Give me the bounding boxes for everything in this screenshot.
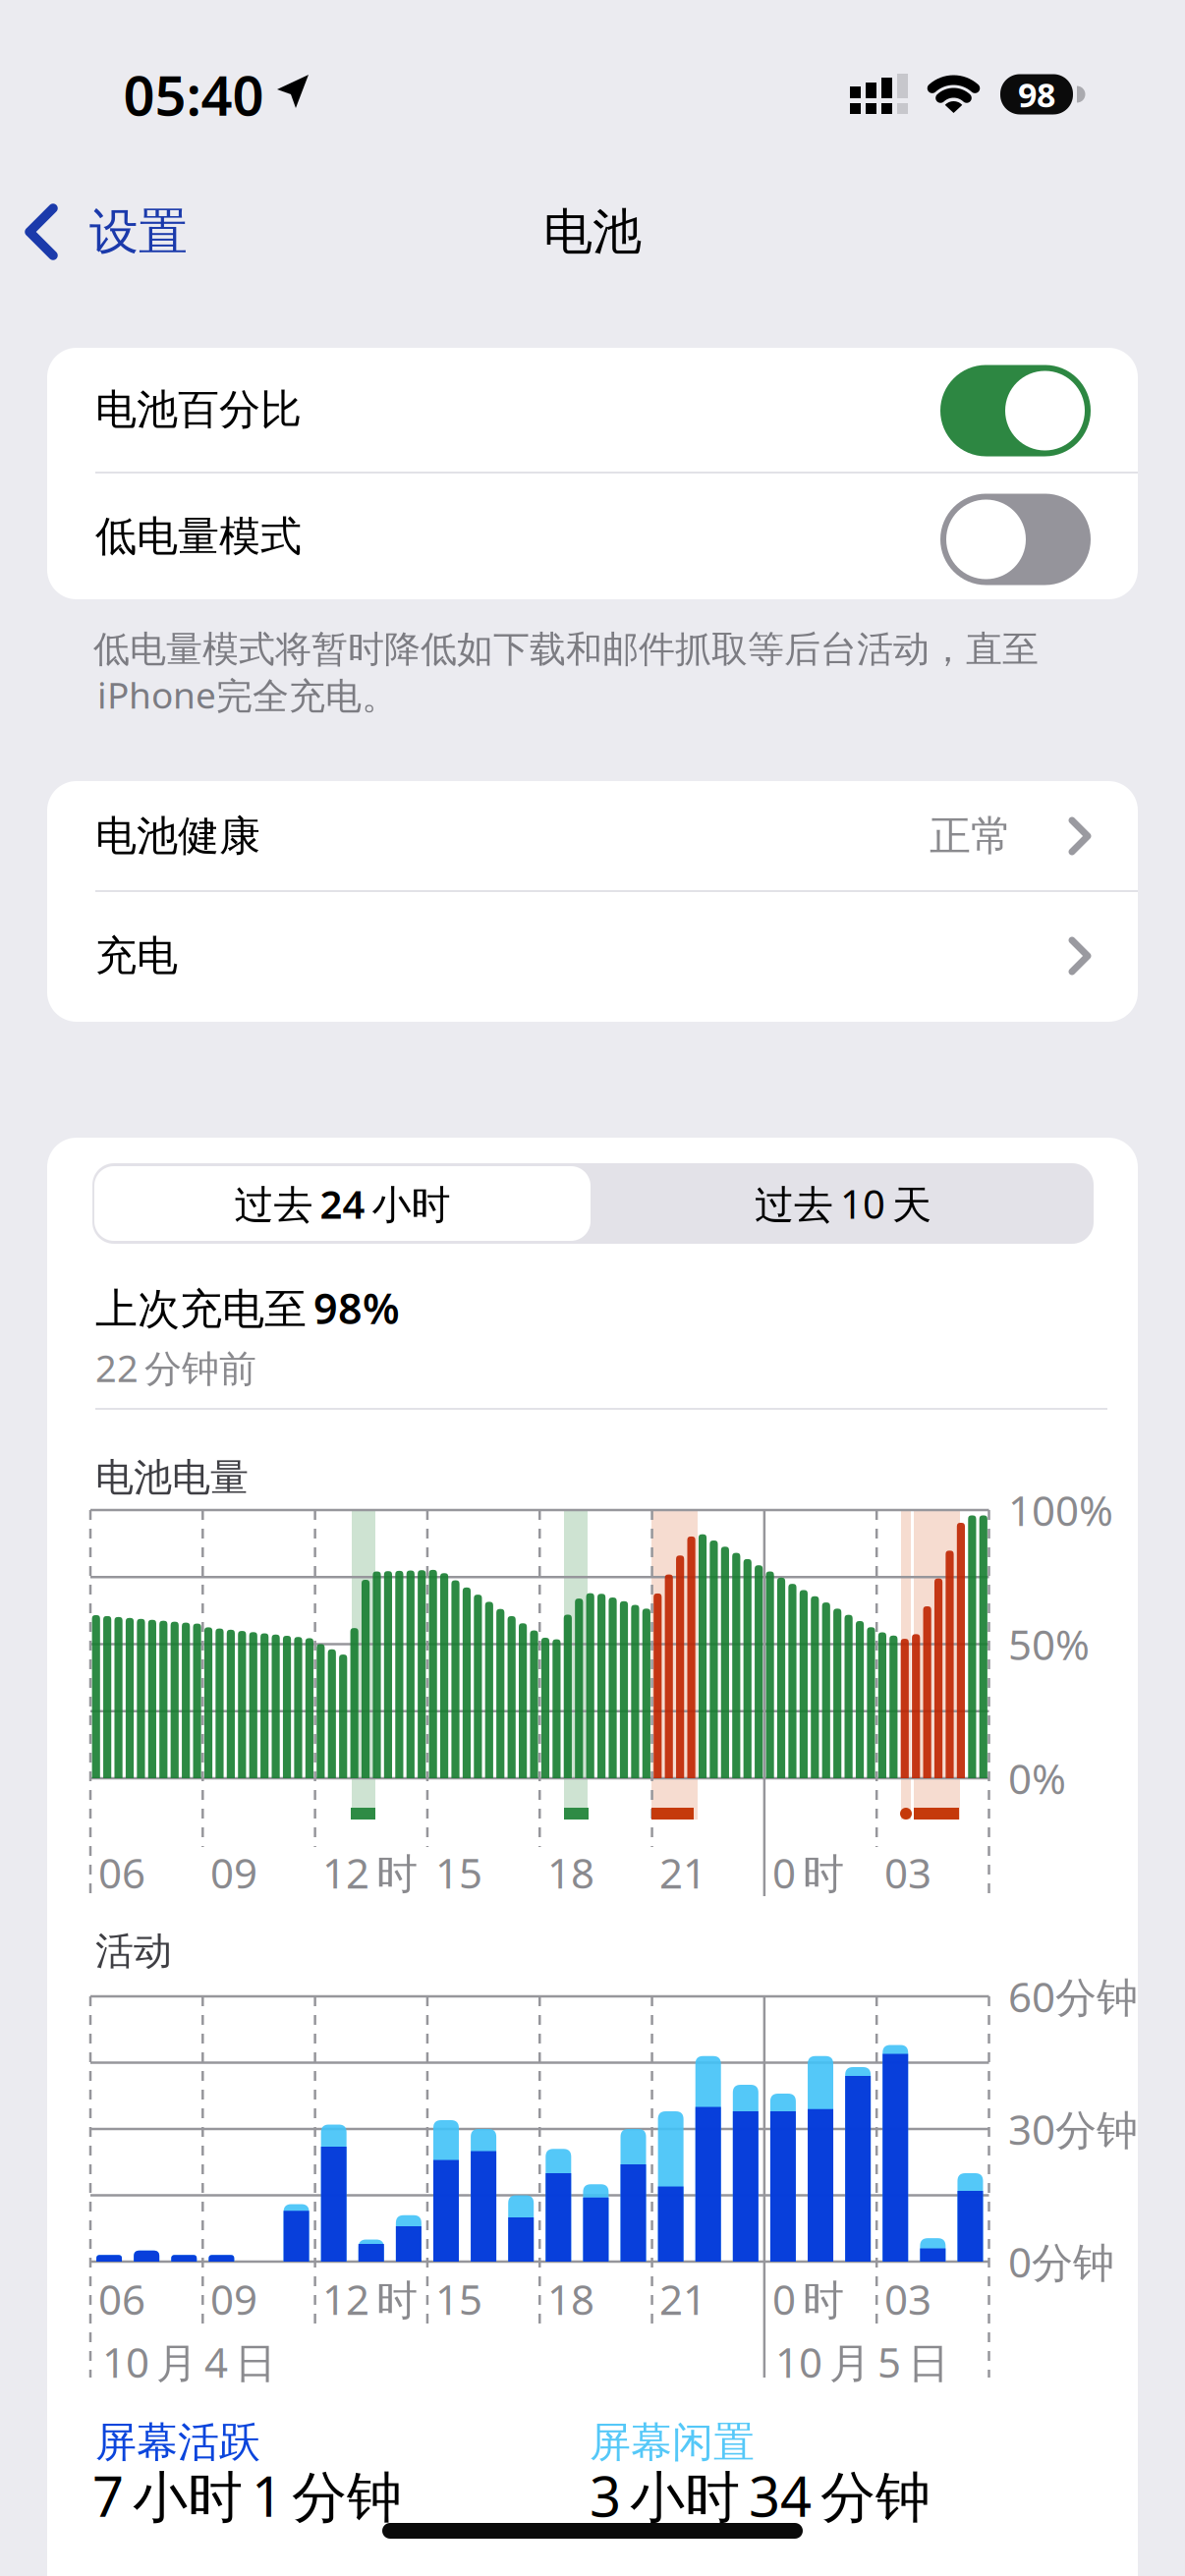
- staticText: 06: [98, 2272, 145, 2326]
- staticText: 0%: [1008, 1751, 1066, 1806]
- staticText: 0 时: [772, 1845, 844, 1900]
- staticText: 电池百分比: [95, 384, 302, 435]
- button[interactable]: 过去 24 小时: [94, 1166, 591, 1241]
- staticText: 电池健康: [95, 811, 260, 861]
- button[interactable]: [940, 365, 1091, 456]
- staticText: 3 小时 34 分钟: [590, 2459, 931, 2532]
- staticText: 0分钟: [1008, 2234, 1114, 2289]
- staticText: iPhone完全充电。: [97, 670, 398, 719]
- button[interactable]: 电池健康: [47, 781, 1138, 891]
- staticText: 正常: [930, 811, 1012, 861]
- staticText: 22 分钟前: [95, 1343, 256, 1392]
- staticText: 7 小时 1 分钟: [92, 2459, 402, 2532]
- staticText: 10 月 4 日: [102, 2334, 276, 2389]
- staticText: 12 时: [322, 1845, 418, 1900]
- button[interactable]: 设置: [0, 188, 216, 276]
- staticText: 上次充电至 98%: [95, 1280, 400, 1336]
- staticText: 低电量模式: [95, 511, 302, 562]
- button[interactable]: [940, 494, 1091, 585]
- staticText: 过去 24 小时: [234, 1177, 451, 1230]
- staticText: 50%: [1008, 1617, 1090, 1672]
- staticText: 12 时: [322, 2272, 418, 2326]
- button[interactable]: 过去 10 天: [607, 1166, 1079, 1241]
- staticText: 10 月 5 日: [775, 2334, 949, 2389]
- staticText: 充电: [95, 931, 178, 981]
- staticText: 09: [210, 1845, 257, 1900]
- staticText: 06: [98, 1845, 145, 1900]
- staticText: 09: [210, 2272, 257, 2326]
- staticText: 低电量模式将暂时降低如下载和邮件抓取等后台活动，直至: [93, 627, 1039, 672]
- staticText: 15: [435, 1845, 482, 1900]
- staticText: 18: [547, 1845, 594, 1900]
- staticText: 60分钟: [1008, 1969, 1138, 2024]
- button[interactable]: 充电: [47, 891, 1138, 1021]
- staticText: 21: [659, 1845, 706, 1900]
- staticText: 过去 10 天: [755, 1177, 931, 1230]
- staticText: 电池: [543, 202, 642, 262]
- staticText: 活动: [95, 1928, 172, 1975]
- staticText: 98: [1018, 72, 1055, 117]
- staticText: 100%: [1008, 1483, 1113, 1537]
- staticText: 屏幕闲置: [590, 2417, 755, 2468]
- staticText: 30分钟: [1008, 2102, 1138, 2156]
- staticText: 03: [884, 2272, 931, 2326]
- staticText: 21: [659, 2272, 706, 2326]
- staticText: 03: [884, 1845, 931, 1900]
- staticText: 18: [547, 2272, 594, 2326]
- staticText: 屏幕活跃: [95, 2417, 260, 2468]
- staticText: 设置: [89, 202, 188, 262]
- staticText: 0 时: [772, 2272, 844, 2326]
- staticText: 15: [435, 2272, 482, 2326]
- staticText: 05:40: [123, 58, 264, 131]
- staticText: 电池电量: [95, 1454, 249, 1501]
